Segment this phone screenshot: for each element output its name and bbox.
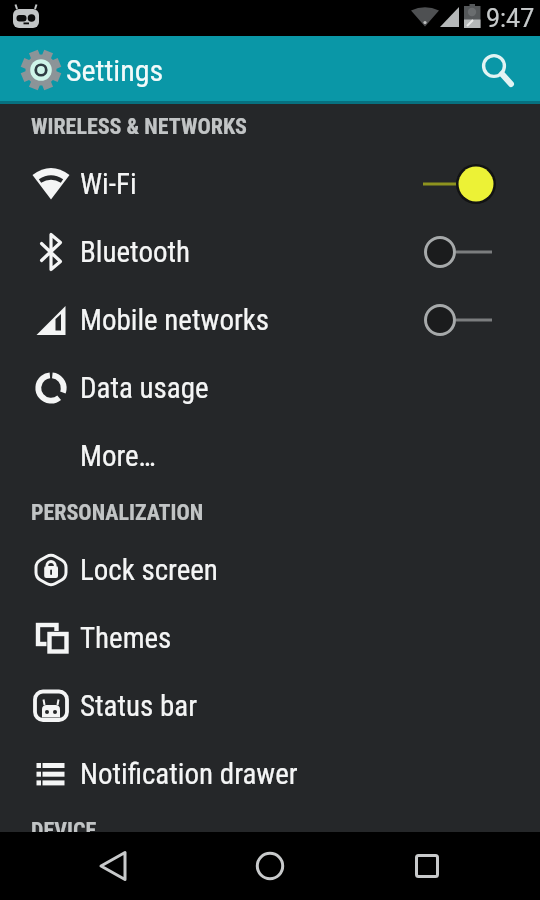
staticText: 9:47 [486, 4, 535, 33]
button[interactable] [472, 36, 540, 104]
button[interactable]: Themes [0, 604, 540, 672]
button[interactable]: Mobile networks [0, 286, 540, 354]
staticText: PERSONALIZATION [31, 500, 204, 526]
staticText: WIRELESS & NETWORKS [31, 114, 247, 140]
staticText: Settings [66, 53, 164, 88]
staticText: Bluetooth [80, 235, 191, 269]
button[interactable] [423, 162, 493, 206]
button[interactable]: Wi-Fi [0, 150, 540, 218]
button[interactable]: Status bar [0, 672, 540, 740]
staticText: More… [80, 439, 156, 473]
staticText: Lock screen [80, 553, 218, 587]
staticText: Notification drawer [80, 757, 298, 791]
staticText: Wi-Fi [80, 167, 137, 201]
staticText: Status bar [80, 689, 198, 723]
staticText: Themes [80, 621, 172, 655]
staticText: DEVICE [31, 818, 97, 832]
button[interactable]: Lock screen [0, 536, 540, 604]
button[interactable] [423, 298, 493, 342]
button[interactable] [393, 832, 461, 900]
button[interactable]: Data usage [0, 354, 540, 422]
button[interactable] [423, 230, 493, 274]
staticText: Data usage [80, 371, 209, 405]
staticText: Mobile networks [80, 303, 270, 337]
button[interactable]: More… [0, 422, 540, 490]
button[interactable]: Bluetooth [0, 218, 540, 286]
button[interactable]: Notification drawer [0, 740, 540, 808]
button[interactable] [79, 832, 147, 900]
button[interactable] [236, 832, 304, 900]
